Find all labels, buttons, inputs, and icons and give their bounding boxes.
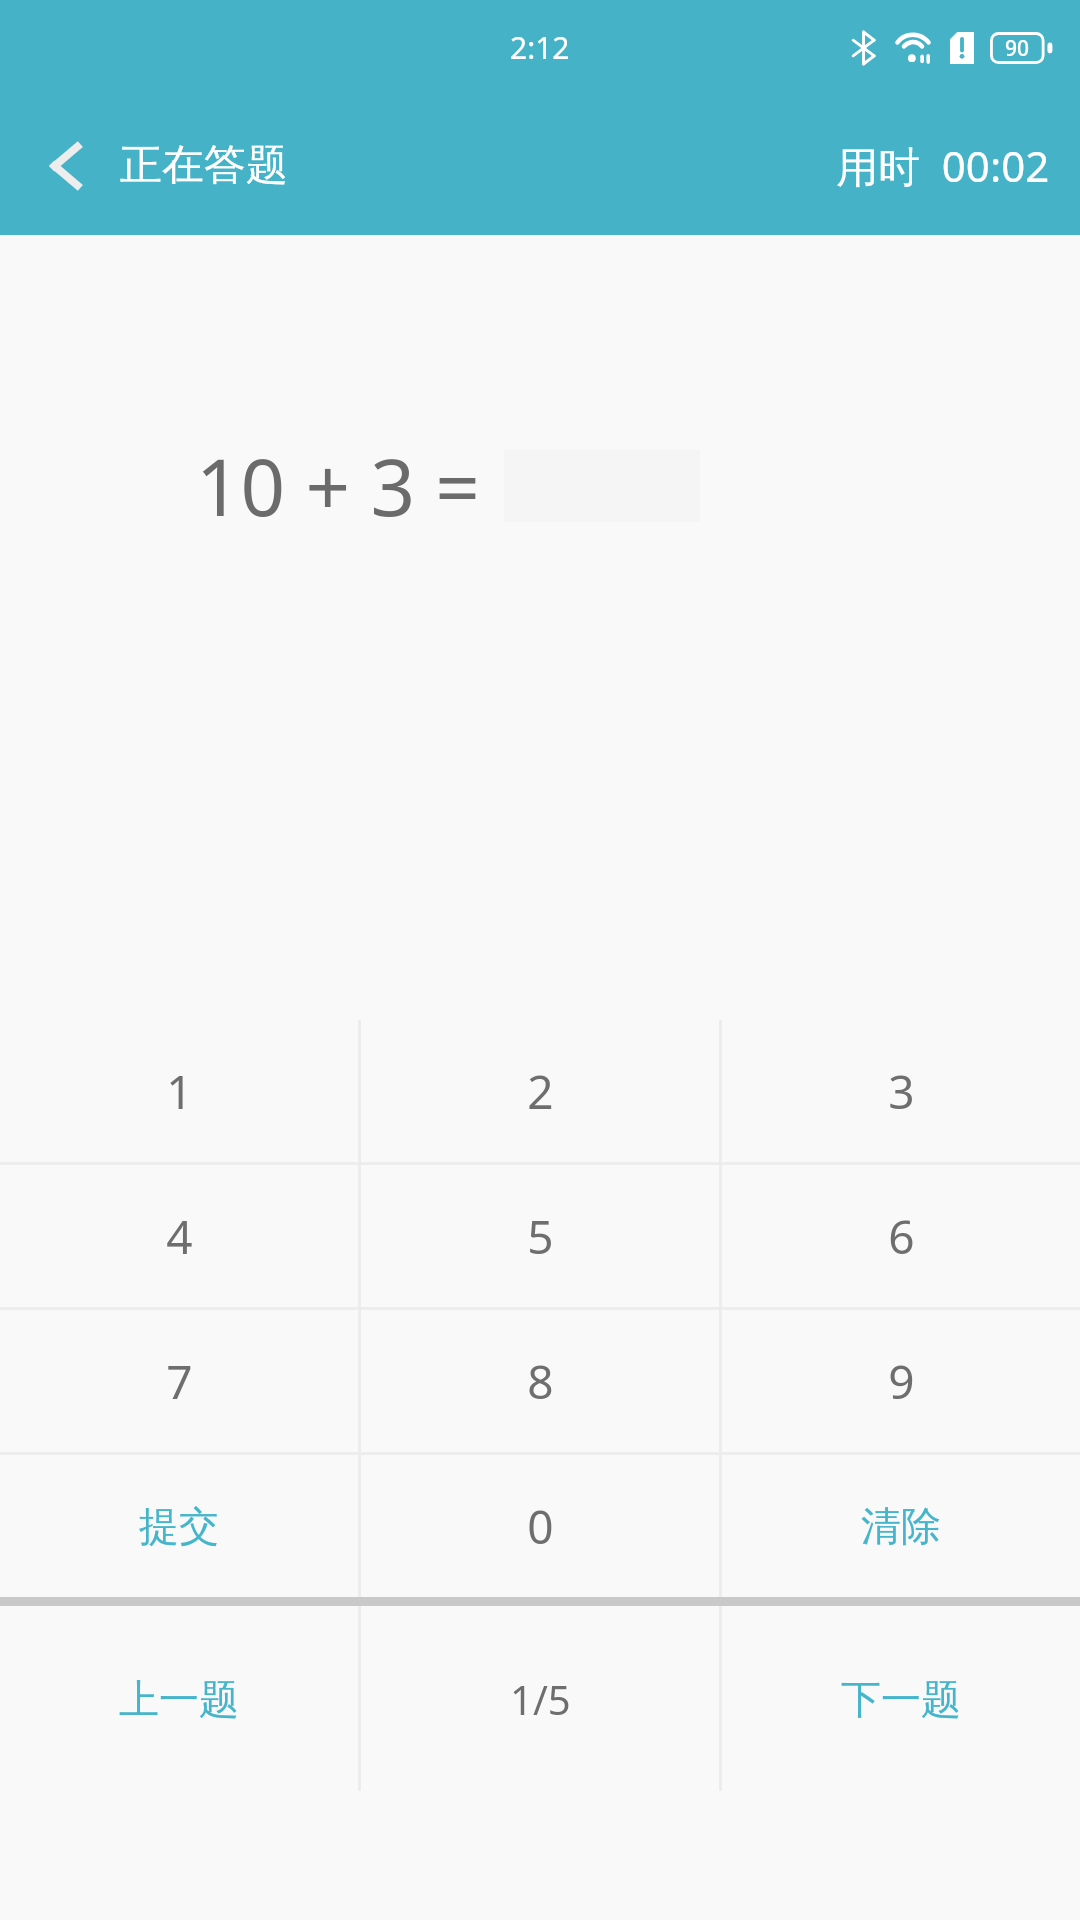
- staticText: 3: [888, 1060, 915, 1123]
- staticText: 4: [166, 1205, 193, 1268]
- button[interactable]: 1/5: [361, 1606, 719, 1791]
- staticText: 10 + 3 =: [196, 433, 480, 539]
- staticText: 提交: [139, 1501, 219, 1551]
- button[interactable]: 9: [722, 1310, 1080, 1452]
- staticText: 9: [888, 1350, 915, 1413]
- staticText: 下一题: [841, 1674, 961, 1724]
- button[interactable]: 0: [361, 1455, 719, 1597]
- staticText: 90: [1005, 34, 1030, 63]
- button[interactable]: 6: [722, 1165, 1080, 1307]
- button[interactable]: 7: [0, 1310, 358, 1452]
- staticText: 用时 00:02: [836, 137, 1050, 194]
- button[interactable]: 4: [0, 1165, 358, 1307]
- staticText: 2:12: [510, 27, 570, 68]
- other: Back: [44, 144, 88, 188]
- button[interactable]: 上一题: [0, 1606, 358, 1791]
- staticText: 1: [166, 1060, 193, 1123]
- button[interactable]: 1: [0, 1020, 358, 1162]
- button[interactable]: 下一题: [722, 1606, 1080, 1791]
- button[interactable]: 提交: [0, 1455, 358, 1597]
- button[interactable]: 清除: [722, 1455, 1080, 1597]
- staticText: 正在答题: [120, 139, 288, 192]
- button[interactable]: 8: [361, 1310, 719, 1452]
- button[interactable]: Back: [0, 123, 310, 208]
- button[interactable]: 2: [361, 1020, 719, 1162]
- button[interactable]: 5: [361, 1165, 719, 1307]
- staticText: 1/5: [510, 1672, 571, 1726]
- staticText: 7: [166, 1350, 193, 1413]
- staticText: 清除: [861, 1501, 941, 1551]
- staticText: 8: [527, 1350, 554, 1413]
- staticText: 5: [527, 1205, 554, 1268]
- staticText: 上一题: [119, 1674, 239, 1724]
- staticText: 2: [527, 1060, 554, 1123]
- staticText: 0: [527, 1495, 554, 1558]
- staticText: 6: [888, 1205, 915, 1268]
- button[interactable]: 3: [722, 1020, 1080, 1162]
